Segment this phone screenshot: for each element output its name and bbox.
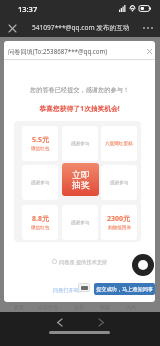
staticText: 分享 bbox=[74, 304, 84, 310]
button[interactable]: Assistant bbox=[132, 254, 154, 276]
staticText: 问卷打开吗? bbox=[53, 286, 82, 293]
staticText: 问卷星 提供技术支持 bbox=[59, 258, 108, 265]
button[interactable]: 感谢参与 bbox=[22, 165, 58, 200]
staticText: 立即 抽奖 bbox=[72, 169, 90, 190]
staticText: 微信红包 bbox=[31, 225, 50, 231]
staticText: 541097***@qq.com 发布的互动 bbox=[32, 23, 130, 32]
staticText: 刷新 bbox=[100, 304, 110, 310]
button[interactable]: Clear bbox=[142, 44, 155, 58]
staticText: 提交成功，马上通知同事 bbox=[96, 286, 154, 293]
button[interactable]: 感谢参与 bbox=[62, 126, 98, 161]
button[interactable]: 立即 抽奖 bbox=[62, 163, 99, 196]
staticText: 8.8元 bbox=[32, 214, 49, 224]
staticText: 您的答卷已经提交，感谢您的参与！ bbox=[4, 86, 155, 94]
button[interactable]: More options bbox=[138, 18, 158, 38]
staticText: 首页 bbox=[14, 304, 24, 310]
button[interactable]: 感谢参与 bbox=[101, 165, 137, 200]
staticText: 六鹿网红蛋糕 bbox=[105, 141, 133, 147]
button[interactable]: Back bbox=[49, 312, 69, 332]
staticText: 5.5元 bbox=[32, 135, 49, 145]
staticText: 恭喜您获得了1次抽奖机会! bbox=[4, 104, 155, 113]
staticText: 13:37 bbox=[18, 4, 38, 14]
staticText: 问卷回填(To:2538687***@qq.com) bbox=[8, 47, 108, 55]
button[interactable]: 5.5元 bbox=[22, 126, 58, 161]
button[interactable]: Keyboard bbox=[78, 283, 90, 292]
staticText: 2300元 bbox=[107, 214, 131, 224]
staticText: 感谢参与 bbox=[110, 180, 129, 186]
button[interactable]: 感谢参与 bbox=[62, 205, 98, 240]
button[interactable]: 提交成功，马上通知同事 bbox=[94, 283, 155, 295]
staticText: 感谢参与 bbox=[71, 220, 90, 226]
staticText: 关闭 bbox=[126, 304, 136, 310]
button[interactable]: 8.8元 bbox=[22, 205, 58, 240]
button[interactable]: 2300元 bbox=[101, 205, 137, 240]
button[interactable]: Close bbox=[2, 18, 22, 38]
button[interactable]: 六鹿网红蛋糕 bbox=[101, 126, 137, 161]
staticText: 购物抵用券 bbox=[108, 225, 131, 231]
staticText: 感谢参与 bbox=[71, 141, 90, 147]
staticText: 微信红包 bbox=[31, 146, 50, 152]
staticText: 感谢参与 bbox=[31, 180, 50, 186]
button[interactable]: Forward bbox=[91, 312, 111, 332]
